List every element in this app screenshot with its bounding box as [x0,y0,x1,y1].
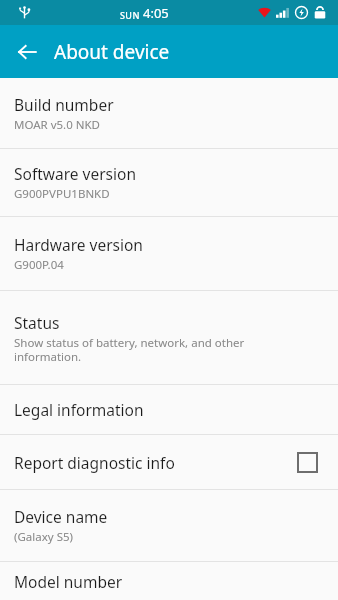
staticText: G900P.04 [14,257,264,273]
button[interactable]: Software version [0,149,338,216]
staticText: Show status of battery, network, and oth… [14,335,264,364]
staticText: Build number [14,94,114,115]
staticText: (Galaxy S5) [14,529,264,545]
button[interactable]: Report diagnostic info checkbox [290,445,324,479]
staticText: Report diagnostic info [14,452,175,473]
button[interactable]: Device name [0,490,338,561]
button[interactable]: Navigate up [8,33,46,71]
staticText: Hardware version [14,234,143,255]
staticText: Status [14,312,60,333]
staticText: Model number [14,571,123,592]
staticText: Software version [14,163,136,184]
button[interactable]: Status [0,291,338,384]
button[interactable]: Build number [0,78,338,148]
staticText: About device [54,39,170,65]
button[interactable]: Report diagnostic info [0,435,338,489]
staticText: G900PVPU1BNKD [14,186,264,202]
button[interactable]: Model number [0,562,338,600]
staticText: Legal information [14,399,144,420]
staticText: SUN [120,9,140,21]
button[interactable]: Legal information [0,385,338,434]
staticText: Device name [14,506,108,527]
staticText: MOAR v5.0 NKD [14,117,264,133]
staticText: 4:05 [143,4,169,22]
button[interactable]: Hardware version [0,217,338,290]
